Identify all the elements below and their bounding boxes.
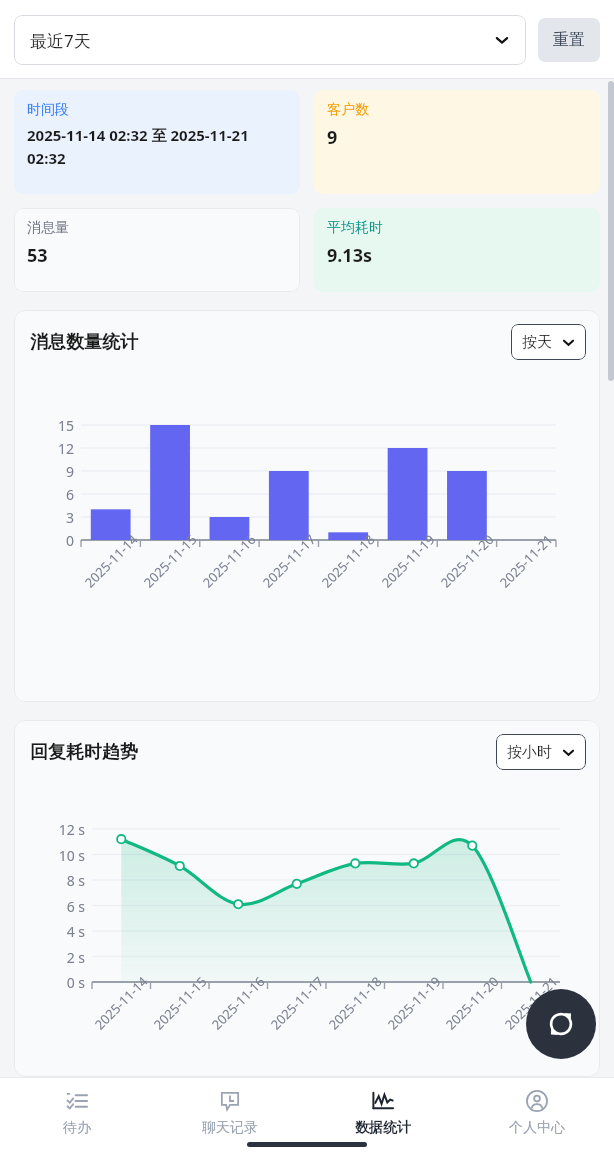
- staticText: 2025-11-17: [267, 973, 327, 1033]
- staticText: 2025-11-15: [150, 973, 210, 1033]
- button[interactable]: 时间段: [14, 90, 300, 194]
- staticText: 客户数: [327, 101, 369, 119]
- button[interactable]: Refresh: [526, 989, 596, 1059]
- staticText: 53: [27, 243, 48, 268]
- button[interactable]: 个人中心: [460, 1077, 614, 1155]
- button[interactable]: 聊天记录: [153, 1077, 306, 1155]
- staticText: 10 s: [58, 846, 85, 865]
- staticText: 消息数量统计: [30, 331, 138, 354]
- staticText: 9: [327, 125, 338, 150]
- staticText: 消息量: [27, 219, 69, 237]
- staticText: 回复耗时趋势: [30, 741, 138, 764]
- button[interactable]: 数据统计: [306, 1077, 460, 1155]
- staticText: 4 s: [66, 922, 85, 941]
- staticText: 2025-11-18: [325, 973, 385, 1033]
- staticText: 0: [65, 531, 74, 550]
- staticText: 9.13s: [327, 243, 372, 268]
- staticText: 12: [57, 439, 74, 458]
- staticText: 2025-11-14: [81, 531, 141, 591]
- button[interactable]: 平均耗时: [314, 208, 600, 292]
- staticText: 2025-11-20: [437, 531, 497, 591]
- staticText: 9: [65, 462, 74, 481]
- staticText: 时间段: [27, 101, 69, 119]
- staticText: 3: [65, 508, 74, 527]
- staticText: 个人中心: [509, 1119, 565, 1137]
- staticText: 2025-11-20: [442, 973, 502, 1033]
- staticText: 平均耗时: [327, 219, 383, 237]
- staticText: 8 s: [66, 871, 85, 890]
- staticText: 2025-11-15: [140, 531, 200, 591]
- staticText: 2025-11-14: [91, 973, 151, 1033]
- staticText: 2025-11-16: [199, 531, 259, 591]
- staticText: 2025-11-19: [378, 531, 438, 591]
- staticText: 0 s: [66, 973, 85, 992]
- staticText: 15: [57, 416, 74, 435]
- staticText: 2025-11-21: [496, 531, 556, 591]
- staticText: 待办: [63, 1119, 91, 1137]
- staticText: 2025-11-21: [501, 973, 561, 1033]
- button[interactable]: 待办: [0, 1077, 153, 1155]
- staticText: 2 s: [66, 948, 85, 967]
- button[interactable]: 按小时: [496, 734, 586, 770]
- staticText: 2025-11-19: [384, 973, 444, 1033]
- staticText: 12 s: [58, 820, 85, 839]
- staticText: 最近7天: [30, 29, 91, 52]
- staticText: 数据统计: [355, 1119, 411, 1137]
- staticText: 2025-11-17: [259, 531, 319, 591]
- button[interactable]: 客户数: [314, 90, 600, 194]
- staticText: 6 s: [66, 897, 85, 916]
- staticText: 6: [65, 485, 74, 504]
- staticText: 2025-11-16: [208, 973, 268, 1033]
- button[interactable]: 按天: [511, 324, 586, 360]
- staticText: 重置: [553, 30, 585, 50]
- staticText: 2025-11-18: [318, 531, 378, 591]
- staticText: 2025-11-14 02:32 至 2025-11-21 02:32: [27, 125, 287, 169]
- staticText: 按天: [522, 333, 552, 352]
- button[interactable]: 最近7天: [14, 15, 526, 65]
- button[interactable]: 消息量: [14, 208, 300, 292]
- staticText: 按小时: [507, 743, 552, 762]
- staticText: 聊天记录: [202, 1119, 258, 1137]
- button[interactable]: 重置: [538, 18, 600, 62]
